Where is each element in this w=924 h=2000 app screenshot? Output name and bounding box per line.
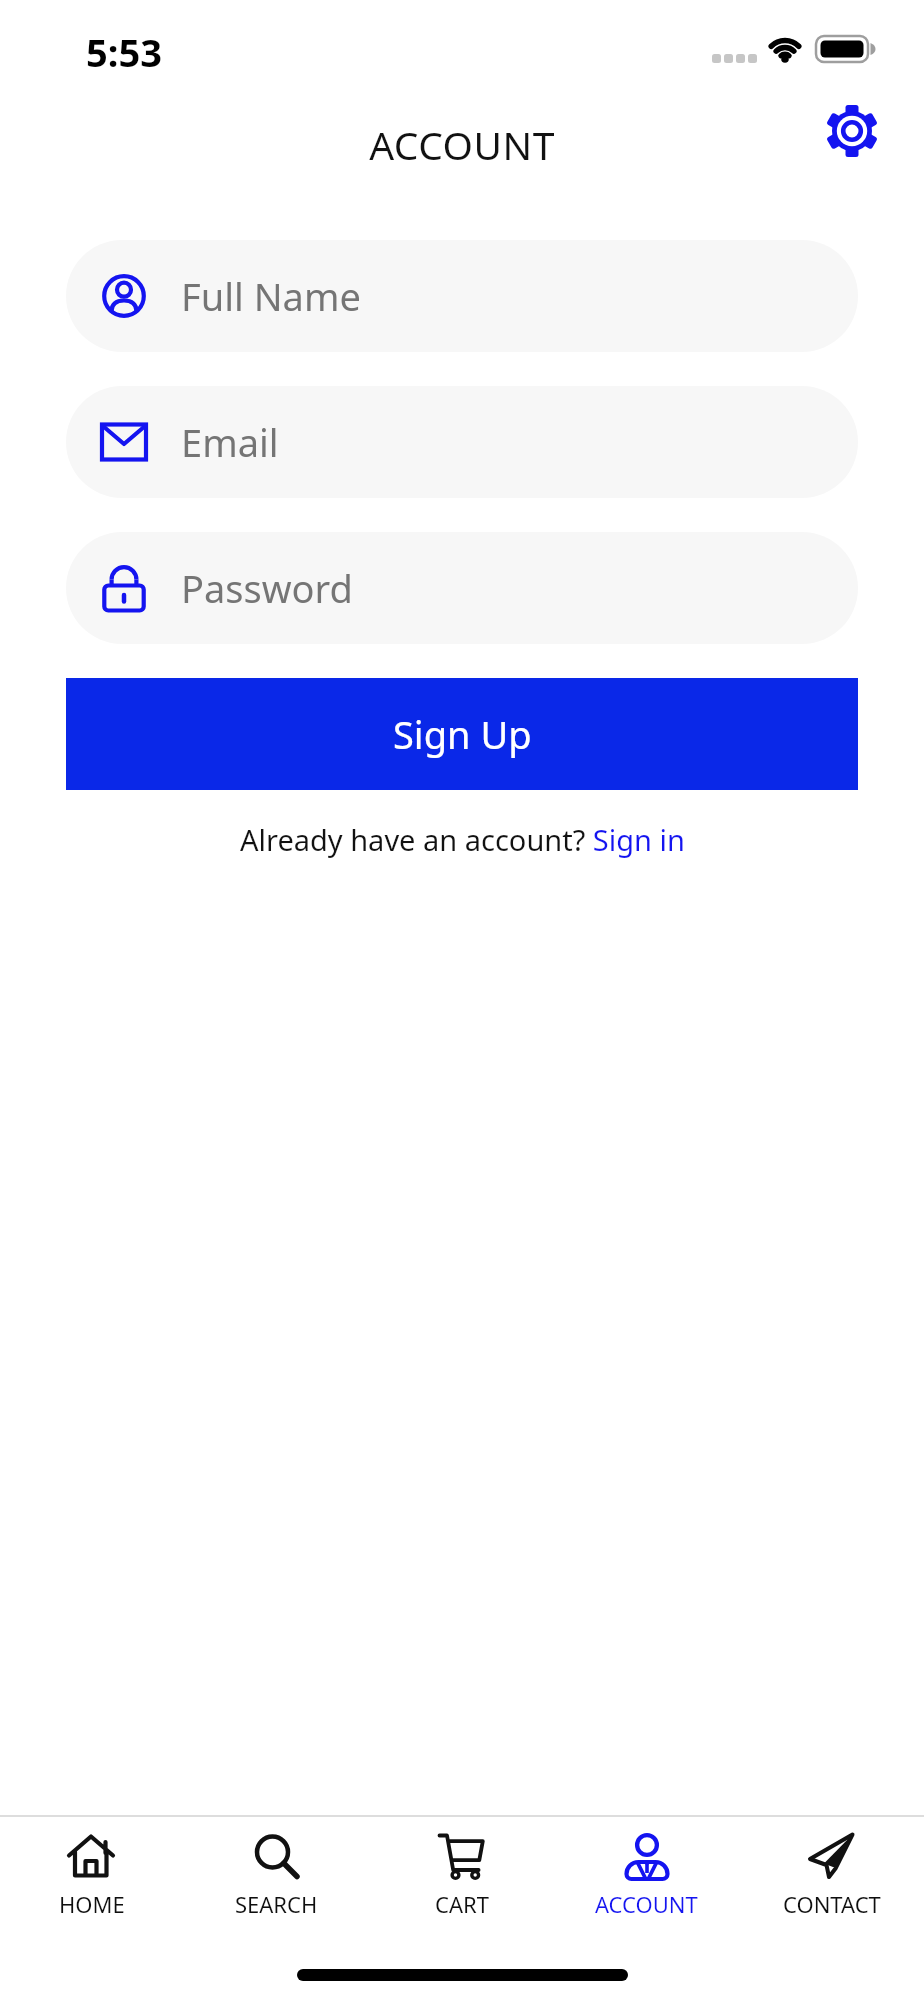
staticText: ACCOUNT <box>0 118 924 171</box>
button[interactable]: SEARCH <box>184 1829 369 1919</box>
button[interactable]: Email <box>66 386 858 498</box>
staticText: ACCOUNT <box>595 1889 698 1919</box>
staticText: SEARCH <box>235 1889 318 1919</box>
button[interactable]: HOME <box>0 1829 184 1919</box>
button[interactable]: Password <box>66 532 858 644</box>
staticText: Email <box>181 416 279 468</box>
staticText: Sign Up <box>393 708 532 760</box>
button[interactable]: CART <box>369 1829 554 1919</box>
button[interactable]: ACCOUNT <box>554 1829 739 1919</box>
staticText: CART <box>435 1889 489 1919</box>
button[interactable]: CONTACT <box>739 1829 924 1919</box>
button[interactable] <box>822 101 882 161</box>
button[interactable]: Sign Up <box>66 678 858 790</box>
staticText: 5:53 <box>86 26 162 78</box>
button[interactable]: Already have an account? Sign in <box>0 820 924 859</box>
staticText: Full Name <box>181 270 361 322</box>
staticText: Password <box>181 562 353 614</box>
staticText: HOME <box>59 1889 125 1919</box>
staticText: Already have an account? Sign in <box>240 820 685 859</box>
button[interactable]: Full Name <box>66 240 858 352</box>
staticText: CONTACT <box>783 1889 881 1919</box>
